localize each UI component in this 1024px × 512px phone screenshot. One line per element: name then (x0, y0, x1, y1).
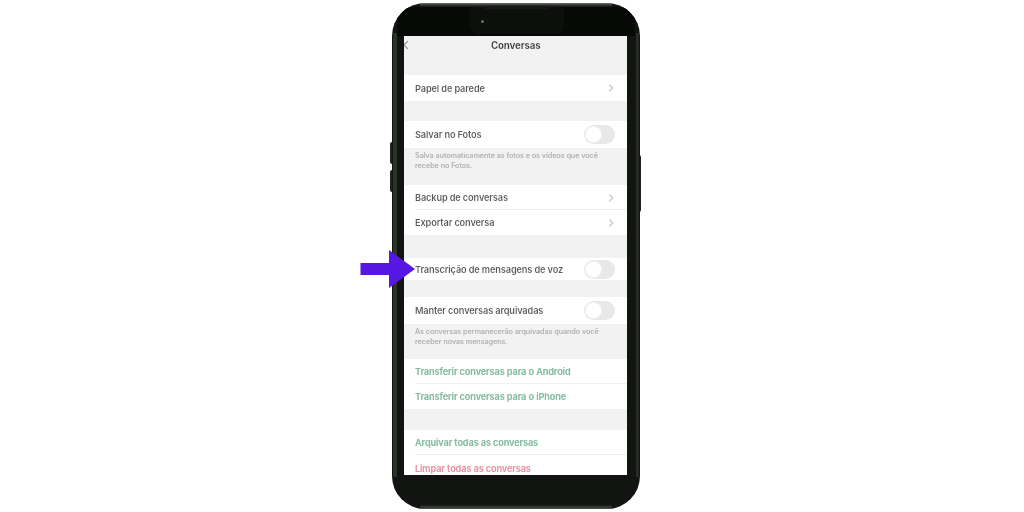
button[interactable]: Transferir conversas para o Android (404, 359, 627, 384)
staticText: Arquivar todas as conversas (415, 437, 539, 448)
button[interactable]: Salvar no Fotos (584, 125, 615, 144)
button[interactable]: Transferir conversas para o iPhone (404, 384, 627, 409)
button[interactable]: Papel de parede (404, 75, 627, 101)
staticText: Backup de conversas (415, 192, 508, 203)
button[interactable]: Salvar no Fotos (404, 121, 627, 148)
button[interactable]: Backup de conversas (404, 185, 627, 210)
button[interactable]: Limpar todas as conversas (404, 455, 627, 475)
staticText: Manter conversas arquivadas (415, 305, 544, 316)
button[interactable]: Manter conversas arquivadas (404, 297, 627, 324)
staticText: Exportar conversa (415, 217, 495, 228)
button[interactable]: Arquivar todas as conversas (404, 430, 627, 455)
staticText: As conversas permanecerão arquivadas qua… (415, 327, 604, 346)
button[interactable]: Exportar conversa (404, 210, 627, 235)
staticText: Papel de parede (415, 83, 485, 94)
button[interactable]: Transcrição de mensagens de voz (404, 258, 627, 280)
staticText: Salva automaticamente as fotos e os víde… (415, 151, 604, 170)
button[interactable]: Back (404, 39, 409, 51)
button[interactable]: Transcrição de mensagens de voz (584, 260, 615, 279)
staticText: Limpar todas as conversas (415, 463, 531, 474)
staticText: Conversas (491, 40, 541, 52)
button[interactable]: Manter conversas arquivadas (584, 301, 615, 320)
staticText: Salvar no Fotos (415, 129, 482, 140)
staticText: Transcrição de mensagens de voz (415, 264, 564, 275)
staticText: Transferir conversas para o Android (415, 366, 571, 377)
staticText: Transferir conversas para o iPhone (415, 391, 567, 402)
